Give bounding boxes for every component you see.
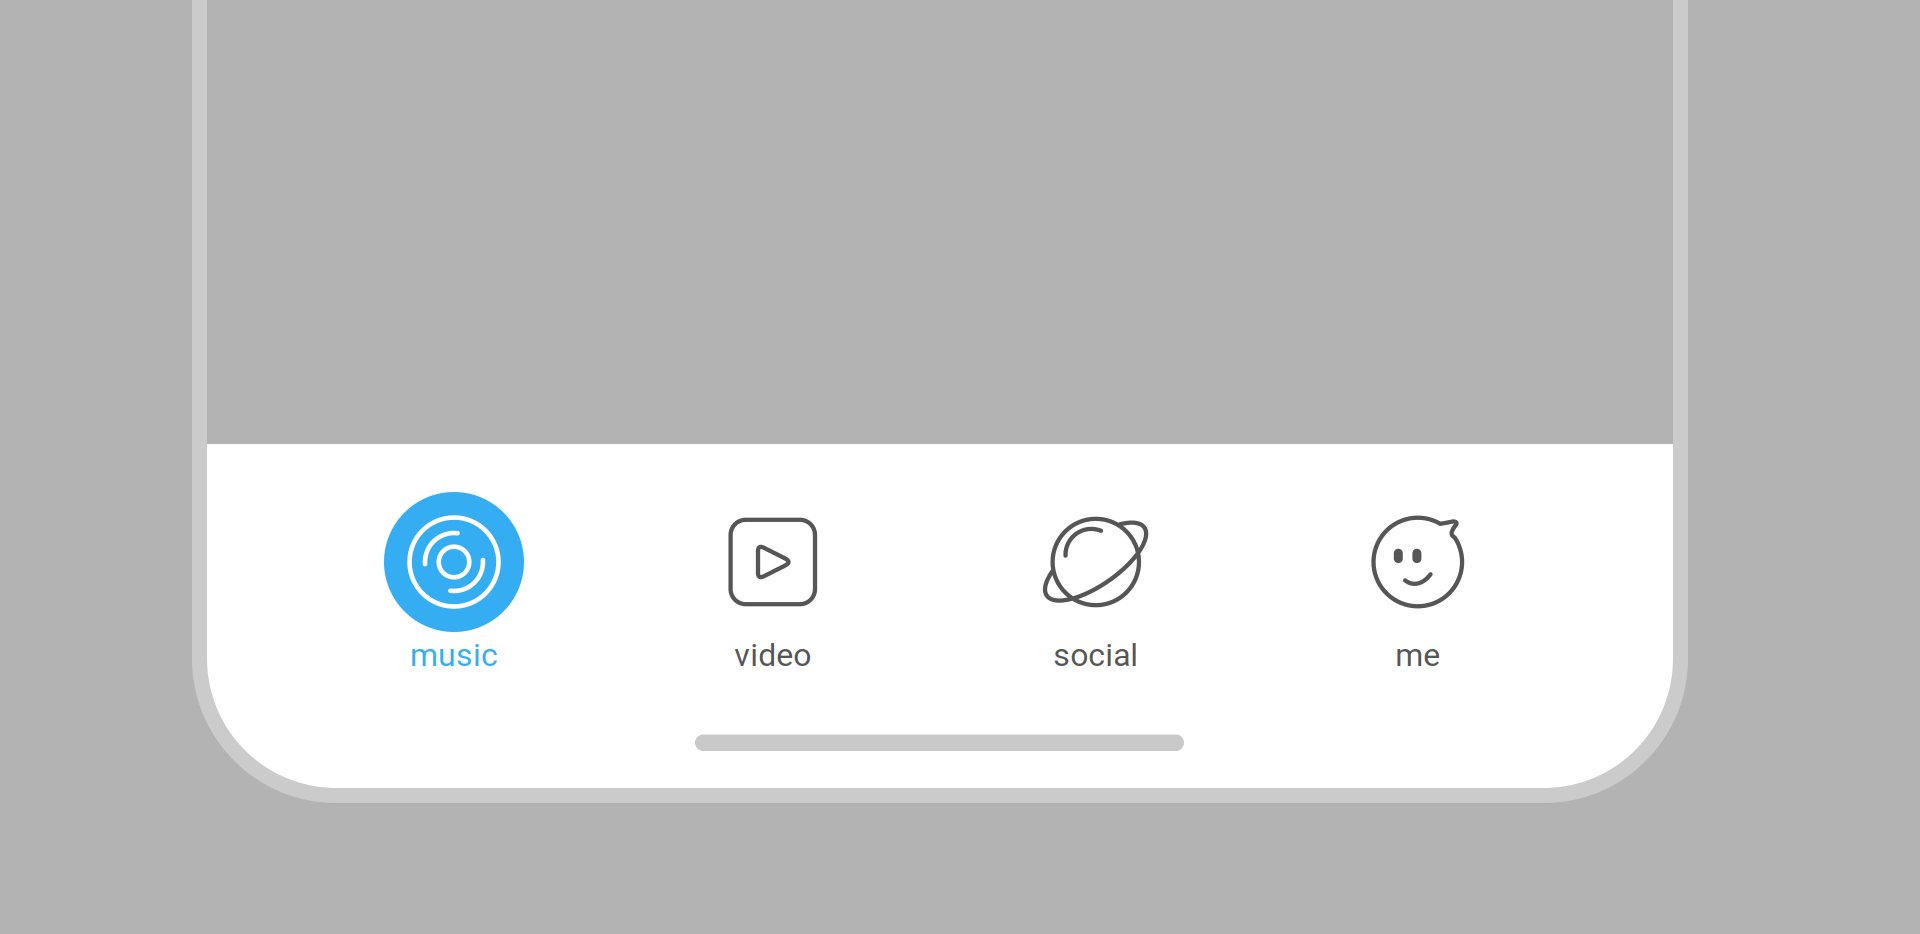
staticText: video bbox=[734, 636, 811, 674]
button[interactable]: video bbox=[612, 484, 933, 700]
button[interactable]: me bbox=[1257, 484, 1578, 700]
staticText: me bbox=[1395, 636, 1440, 674]
staticText: social bbox=[1053, 636, 1138, 674]
staticText: music bbox=[410, 636, 498, 674]
button[interactable]: music bbox=[293, 484, 614, 700]
button[interactable]: social bbox=[935, 484, 1256, 700]
